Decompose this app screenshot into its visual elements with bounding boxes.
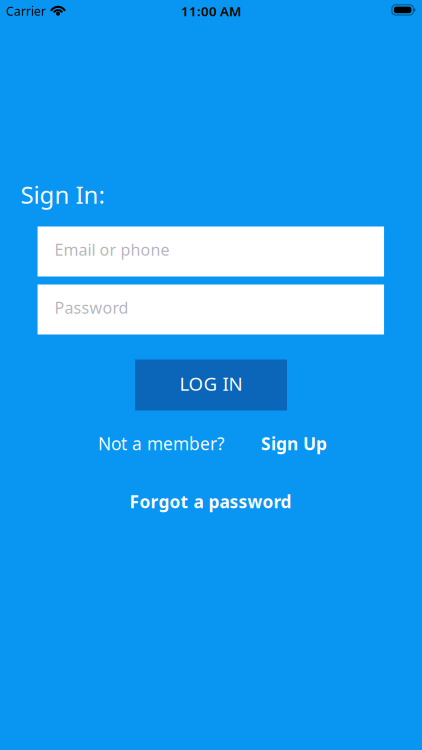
staticText: Forgot a password xyxy=(129,490,291,513)
button[interactable]: Email or phone xyxy=(38,226,384,276)
staticText: Sign In: xyxy=(20,179,104,210)
button[interactable]: LOG IN xyxy=(135,359,287,410)
staticText: Password xyxy=(55,297,129,318)
staticText: Not a member? xyxy=(98,432,225,455)
staticText: Email or phone xyxy=(55,239,170,260)
button[interactable]: Password xyxy=(38,284,384,334)
staticText: LOG IN xyxy=(179,371,242,396)
button[interactable]: Sign Up xyxy=(261,432,327,455)
button[interactable]: Forgot a password xyxy=(129,490,291,513)
staticText: Sign Up xyxy=(261,432,327,455)
staticText: 11:00 AM xyxy=(181,2,241,20)
staticText: Carrier xyxy=(6,3,46,19)
